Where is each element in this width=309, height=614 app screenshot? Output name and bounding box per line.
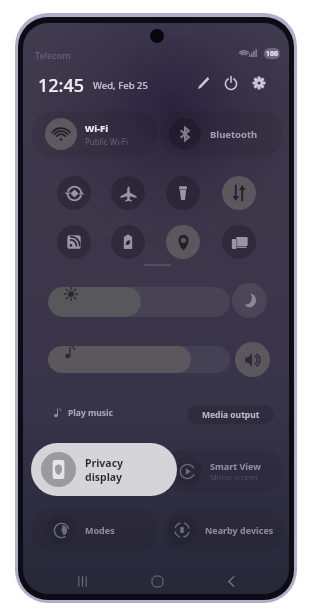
staticText: 12:45	[38, 73, 85, 98]
button[interactable]: Auto rotate	[57, 176, 91, 210]
staticText: display	[85, 470, 123, 484]
staticText: Smart View	[210, 460, 261, 472]
button[interactable]: Flashlight	[166, 176, 200, 210]
button[interactable]: Bluetooth	[160, 111, 284, 157]
button[interactable]: Play music	[53, 404, 113, 422]
staticText: Play music	[68, 407, 113, 419]
staticText: 100	[266, 49, 279, 59]
button[interactable]: Modes	[31, 508, 158, 552]
button[interactable]: Privacy	[31, 443, 177, 496]
button[interactable]: Brightness	[48, 287, 230, 317]
button[interactable]: Sound settings	[235, 342, 270, 377]
staticText: Nearby devices	[205, 524, 274, 536]
button[interactable]: Recents	[67, 566, 97, 594]
button[interactable]: Hotspot	[57, 225, 91, 259]
staticText: Modes	[85, 524, 115, 536]
staticText: Media output	[202, 409, 260, 421]
button[interactable]: Link to Windows	[222, 225, 256, 259]
button[interactable]: Nearby devices	[163, 508, 284, 552]
staticText: Wed, Feb 25	[93, 79, 148, 92]
button[interactable]: Settings	[248, 72, 270, 94]
button[interactable]: Airplane mode	[111, 176, 145, 210]
button[interactable]: Battery saver	[111, 225, 145, 259]
button[interactable]: Dark mode	[232, 283, 267, 318]
button[interactable]: Back	[216, 566, 246, 594]
staticText: Bluetooth	[210, 128, 258, 141]
staticText: Wi-Fi	[85, 122, 109, 135]
button[interactable]: Media volume	[48, 346, 230, 373]
staticText: Public Wi-Fi	[85, 136, 129, 147]
button[interactable]: Power	[220, 72, 242, 94]
button[interactable]: Media output	[187, 405, 274, 424]
staticText: Telecom	[35, 49, 71, 61]
staticText: Privacy	[85, 456, 124, 470]
button[interactable]: Home	[142, 566, 172, 594]
button[interactable]: Location	[166, 225, 200, 259]
button[interactable]: Mobile data	[222, 176, 256, 210]
button[interactable]: Smart View	[163, 449, 284, 493]
staticText: Mirror screen	[210, 472, 258, 482]
button[interactable]: Edit	[193, 72, 215, 94]
button[interactable]: Wi-Fi	[31, 111, 158, 157]
